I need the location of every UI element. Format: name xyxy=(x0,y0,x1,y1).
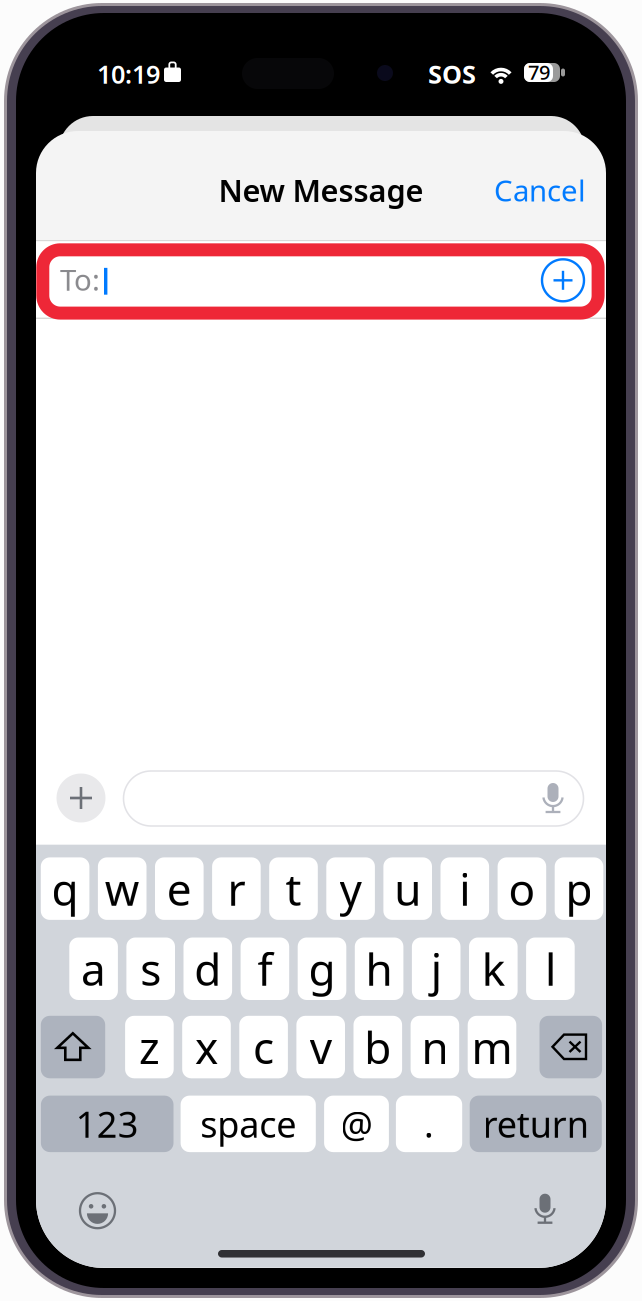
button[interactable]: space xyxy=(181,1096,316,1152)
staticText: x xyxy=(195,1018,218,1076)
staticText: c xyxy=(253,1018,274,1076)
button[interactable]: @ xyxy=(324,1096,389,1152)
staticText: @ xyxy=(340,1100,372,1148)
staticText: a xyxy=(81,939,106,998)
button[interactable]: a xyxy=(69,937,118,1000)
staticText: l xyxy=(545,939,556,998)
staticText: q xyxy=(52,859,79,918)
staticText: r xyxy=(227,859,245,918)
button[interactable]: e xyxy=(155,857,204,920)
staticText: w xyxy=(105,859,140,918)
staticText: o xyxy=(508,859,535,918)
staticText: k xyxy=(482,939,505,998)
button[interactable]: h xyxy=(355,937,403,1000)
button[interactable]: 123 xyxy=(41,1096,173,1152)
button[interactable]: Delete xyxy=(539,1016,602,1078)
button[interactable]: u xyxy=(383,857,432,920)
staticText: SOS xyxy=(428,57,476,91)
staticText: z xyxy=(139,1018,160,1076)
button[interactable]: w xyxy=(98,857,146,920)
button[interactable]: b xyxy=(353,1016,402,1078)
button[interactable]: return xyxy=(470,1096,602,1152)
button[interactable]: x xyxy=(182,1016,231,1078)
button[interactable]: Dictation xyxy=(531,1194,559,1226)
staticText: t xyxy=(285,859,301,918)
button[interactable]: l xyxy=(526,937,575,1000)
staticText: v xyxy=(310,1018,332,1076)
button[interactable]: n xyxy=(411,1016,459,1078)
staticText: j xyxy=(431,939,442,998)
button[interactable]: q xyxy=(41,857,89,920)
button[interactable]: t xyxy=(269,857,318,920)
staticText: New Message xyxy=(218,170,423,210)
staticText: e xyxy=(167,859,192,918)
button[interactable]: m xyxy=(468,1016,516,1078)
button[interactable]: r xyxy=(212,857,261,920)
button[interactable]: z xyxy=(125,1016,174,1078)
button[interactable]: Emoji xyxy=(78,1192,116,1230)
button[interactable]: p xyxy=(555,857,603,920)
staticText: p xyxy=(565,859,592,918)
button[interactable]: c xyxy=(239,1016,288,1078)
staticText: s xyxy=(140,939,161,998)
button[interactable]: j xyxy=(412,937,460,1000)
staticText: return xyxy=(483,1100,589,1148)
button[interactable]: i xyxy=(440,857,489,920)
staticText: 123 xyxy=(76,1100,139,1148)
staticText: To: xyxy=(60,260,100,299)
staticText: Cancel xyxy=(494,170,586,209)
staticText: i xyxy=(459,859,470,918)
staticText: d xyxy=(194,939,221,998)
staticText: y xyxy=(340,859,362,918)
staticText: h xyxy=(366,939,393,998)
staticText: . xyxy=(424,1100,434,1148)
staticText: 79 xyxy=(528,59,550,85)
staticText: b xyxy=(364,1018,391,1076)
staticText: space xyxy=(200,1100,296,1148)
button[interactable]: Attach xyxy=(56,773,105,822)
button[interactable]: Shift xyxy=(41,1016,105,1078)
staticText: u xyxy=(394,859,421,918)
button[interactable]: s xyxy=(126,937,175,1000)
button[interactable]: f xyxy=(241,937,289,1000)
button[interactable]: Add contact xyxy=(542,259,584,301)
button[interactable]: o xyxy=(498,857,546,920)
button[interactable]: v xyxy=(296,1016,345,1078)
staticText: m xyxy=(471,1018,512,1076)
staticText: g xyxy=(308,939,335,998)
button[interactable]: y xyxy=(326,857,375,920)
button[interactable]: Cancel xyxy=(456,135,586,244)
staticText: 10:19 xyxy=(97,57,160,91)
button[interactable]: . xyxy=(396,1096,462,1152)
staticText: f xyxy=(257,939,272,998)
button[interactable]: d xyxy=(183,937,232,1000)
staticText: n xyxy=(421,1018,448,1076)
button[interactable]: g xyxy=(298,937,346,1000)
button[interactable]: k xyxy=(469,937,518,1000)
